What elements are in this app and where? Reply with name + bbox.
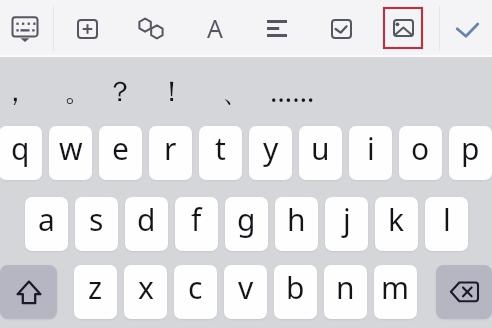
button[interactable]: h (275, 197, 318, 251)
button[interactable]: b (274, 265, 317, 319)
button[interactable]: o (399, 126, 442, 180)
button[interactable]: Insert (66, 0, 108, 57)
staticText: y (263, 128, 279, 169)
button[interactable]: i (349, 126, 392, 180)
button[interactable]: Backspace (436, 265, 492, 319)
button[interactable]: q (0, 126, 42, 180)
staticText: n (336, 267, 355, 308)
button[interactable]: x (124, 265, 167, 319)
staticText: c (188, 267, 203, 308)
staticText: x (138, 267, 154, 308)
staticText: ？ (106, 74, 134, 109)
staticText: v (238, 267, 254, 308)
button[interactable]: n (324, 265, 367, 319)
staticText: q (11, 128, 30, 169)
staticText: p (461, 128, 480, 169)
button[interactable]: Link (130, 0, 172, 57)
button[interactable]: g (225, 197, 268, 251)
staticText: j (343, 199, 351, 240)
staticText: w (59, 128, 83, 169)
button[interactable]: ？ (96, 60, 144, 122)
staticText: r (164, 128, 177, 169)
button[interactable]: k (375, 197, 418, 251)
staticText: h (287, 199, 306, 240)
button[interactable]: Checklist (320, 0, 362, 57)
staticText: e (112, 128, 129, 169)
staticText: 、 (222, 74, 250, 109)
button[interactable]: r (149, 126, 192, 180)
button[interactable]: u (299, 126, 342, 180)
button[interactable]: c (174, 265, 217, 319)
button[interactable]: j (325, 197, 368, 251)
button[interactable]: z (74, 265, 117, 319)
button[interactable]: ！ (148, 60, 196, 122)
button[interactable]: m (374, 265, 417, 319)
staticText: …… (270, 72, 315, 110)
button[interactable]: w (49, 126, 92, 180)
button[interactable]: l (425, 197, 468, 251)
staticText: d (137, 199, 156, 240)
staticText: g (237, 199, 256, 240)
staticText: l (443, 199, 451, 240)
button[interactable]: a (25, 197, 68, 251)
button[interactable]: 。 (54, 60, 102, 122)
button[interactable]: v (224, 265, 267, 319)
button[interactable]: Shift (0, 265, 57, 319)
staticText: t (215, 128, 226, 169)
staticText: o (411, 128, 430, 169)
staticText: i (367, 128, 375, 169)
staticText: ！ (158, 74, 186, 109)
staticText: m (381, 267, 410, 308)
button[interactable]: List (256, 0, 298, 57)
staticText: u (311, 128, 330, 169)
button[interactable]: t (199, 126, 242, 180)
staticText: b (286, 267, 305, 308)
staticText: ， (1, 74, 29, 109)
staticText: s (89, 199, 104, 240)
staticText: z (88, 267, 103, 308)
button[interactable]: f (175, 197, 218, 251)
staticText: k (388, 199, 405, 240)
button[interactable]: y (249, 126, 292, 180)
button[interactable]: Text style (194, 0, 236, 57)
staticText: f (191, 199, 202, 240)
button[interactable]: ， (0, 60, 39, 122)
staticText: a (38, 199, 55, 240)
button[interactable]: s (75, 197, 118, 251)
button[interactable]: Insert image (384, 8, 422, 48)
button[interactable]: p (449, 126, 492, 180)
staticText: 。 (64, 74, 92, 109)
button[interactable]: d (125, 197, 168, 251)
button[interactable]: Hide keyboard (0, 0, 49, 57)
button[interactable]: e (99, 126, 142, 180)
button[interactable]: 、 (212, 60, 260, 122)
button[interactable]: …… (268, 60, 316, 122)
staticText: A (207, 11, 223, 45)
button[interactable]: Done (446, 0, 488, 57)
